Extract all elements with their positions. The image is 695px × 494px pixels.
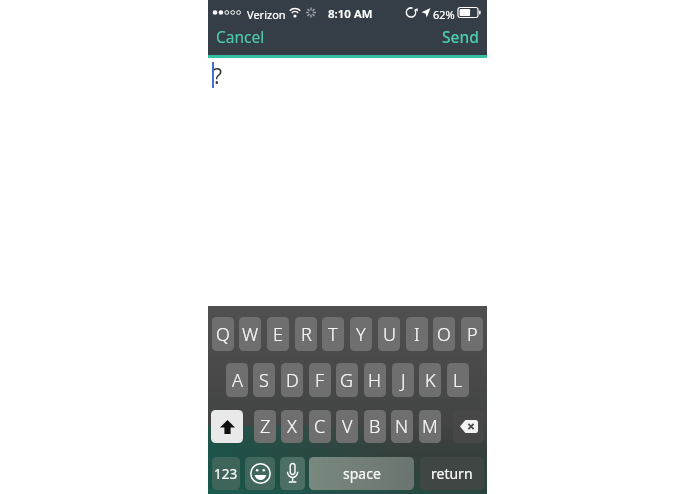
staticText: Verizon: [247, 7, 286, 22]
staticText: D: [286, 368, 299, 393]
staticText: R: [301, 322, 312, 347]
staticText: ?: [213, 62, 223, 91]
button[interactable]: H: [364, 363, 386, 397]
staticText: N: [395, 414, 409, 439]
staticText: P: [467, 322, 478, 347]
button[interactable]: X: [281, 410, 303, 443]
button[interactable]: W: [239, 317, 261, 351]
staticText: S: [259, 368, 269, 393]
staticText: Y: [356, 322, 366, 347]
staticText: L: [453, 368, 463, 393]
button[interactable]: space: [309, 457, 414, 490]
button[interactable]: N: [391, 410, 413, 443]
staticText: space: [343, 464, 381, 483]
staticText: return: [431, 464, 473, 483]
button[interactable]: [280, 457, 305, 490]
button[interactable]: Y: [350, 317, 372, 351]
button[interactable]: T: [322, 317, 344, 351]
staticText: U: [383, 322, 396, 347]
staticText: Q: [216, 322, 230, 347]
staticText: H: [368, 368, 382, 393]
staticText: X: [287, 414, 297, 439]
button[interactable]: K: [419, 363, 441, 397]
button[interactable]: O: [433, 317, 455, 351]
staticText: E: [273, 322, 283, 347]
button[interactable]: B: [364, 410, 386, 443]
button[interactable]: I: [406, 317, 428, 351]
staticText: V: [342, 414, 353, 439]
button[interactable]: [245, 457, 275, 490]
staticText: K: [425, 368, 436, 393]
staticText: Z: [260, 414, 271, 439]
staticText: G: [340, 368, 354, 393]
button[interactable]: 123: [212, 457, 240, 490]
button[interactable]: E: [267, 317, 289, 351]
button[interactable]: A: [226, 363, 248, 397]
staticText: 62%: [433, 7, 455, 22]
button[interactable]: J: [392, 363, 414, 397]
staticText: Cancel: [216, 26, 265, 47]
staticText: C: [314, 414, 326, 439]
staticText: 8:10 AM: [328, 6, 373, 22]
staticText: A: [232, 368, 243, 393]
button[interactable]: Cancel: [212, 22, 282, 50]
button[interactable]: U: [378, 317, 400, 351]
staticText: I: [414, 322, 420, 347]
staticText: 123: [214, 465, 238, 483]
button[interactable]: [211, 410, 243, 443]
button[interactable]: return: [420, 457, 484, 490]
staticText: M: [422, 414, 438, 439]
staticText: F: [315, 368, 325, 393]
button[interactable]: Q: [212, 317, 234, 351]
staticText: J: [401, 368, 406, 393]
button[interactable]: F: [309, 363, 331, 397]
button[interactable]: P: [461, 317, 483, 351]
button[interactable]: D: [281, 363, 303, 397]
staticText: Send: [442, 26, 479, 47]
button[interactable]: C: [309, 410, 331, 443]
button[interactable]: G: [336, 363, 358, 397]
staticText: W: [242, 322, 259, 347]
button[interactable]: V: [336, 410, 358, 443]
button[interactable]: R: [295, 317, 317, 351]
staticText: B: [369, 414, 381, 439]
button[interactable]: Send: [413, 22, 483, 50]
staticText: T: [328, 322, 338, 347]
button[interactable]: Z: [254, 410, 276, 443]
button[interactable]: L: [447, 363, 469, 397]
button[interactable]: [453, 410, 484, 443]
button[interactable]: M: [419, 410, 441, 443]
staticText: O: [437, 322, 451, 347]
button[interactable]: S: [253, 363, 275, 397]
